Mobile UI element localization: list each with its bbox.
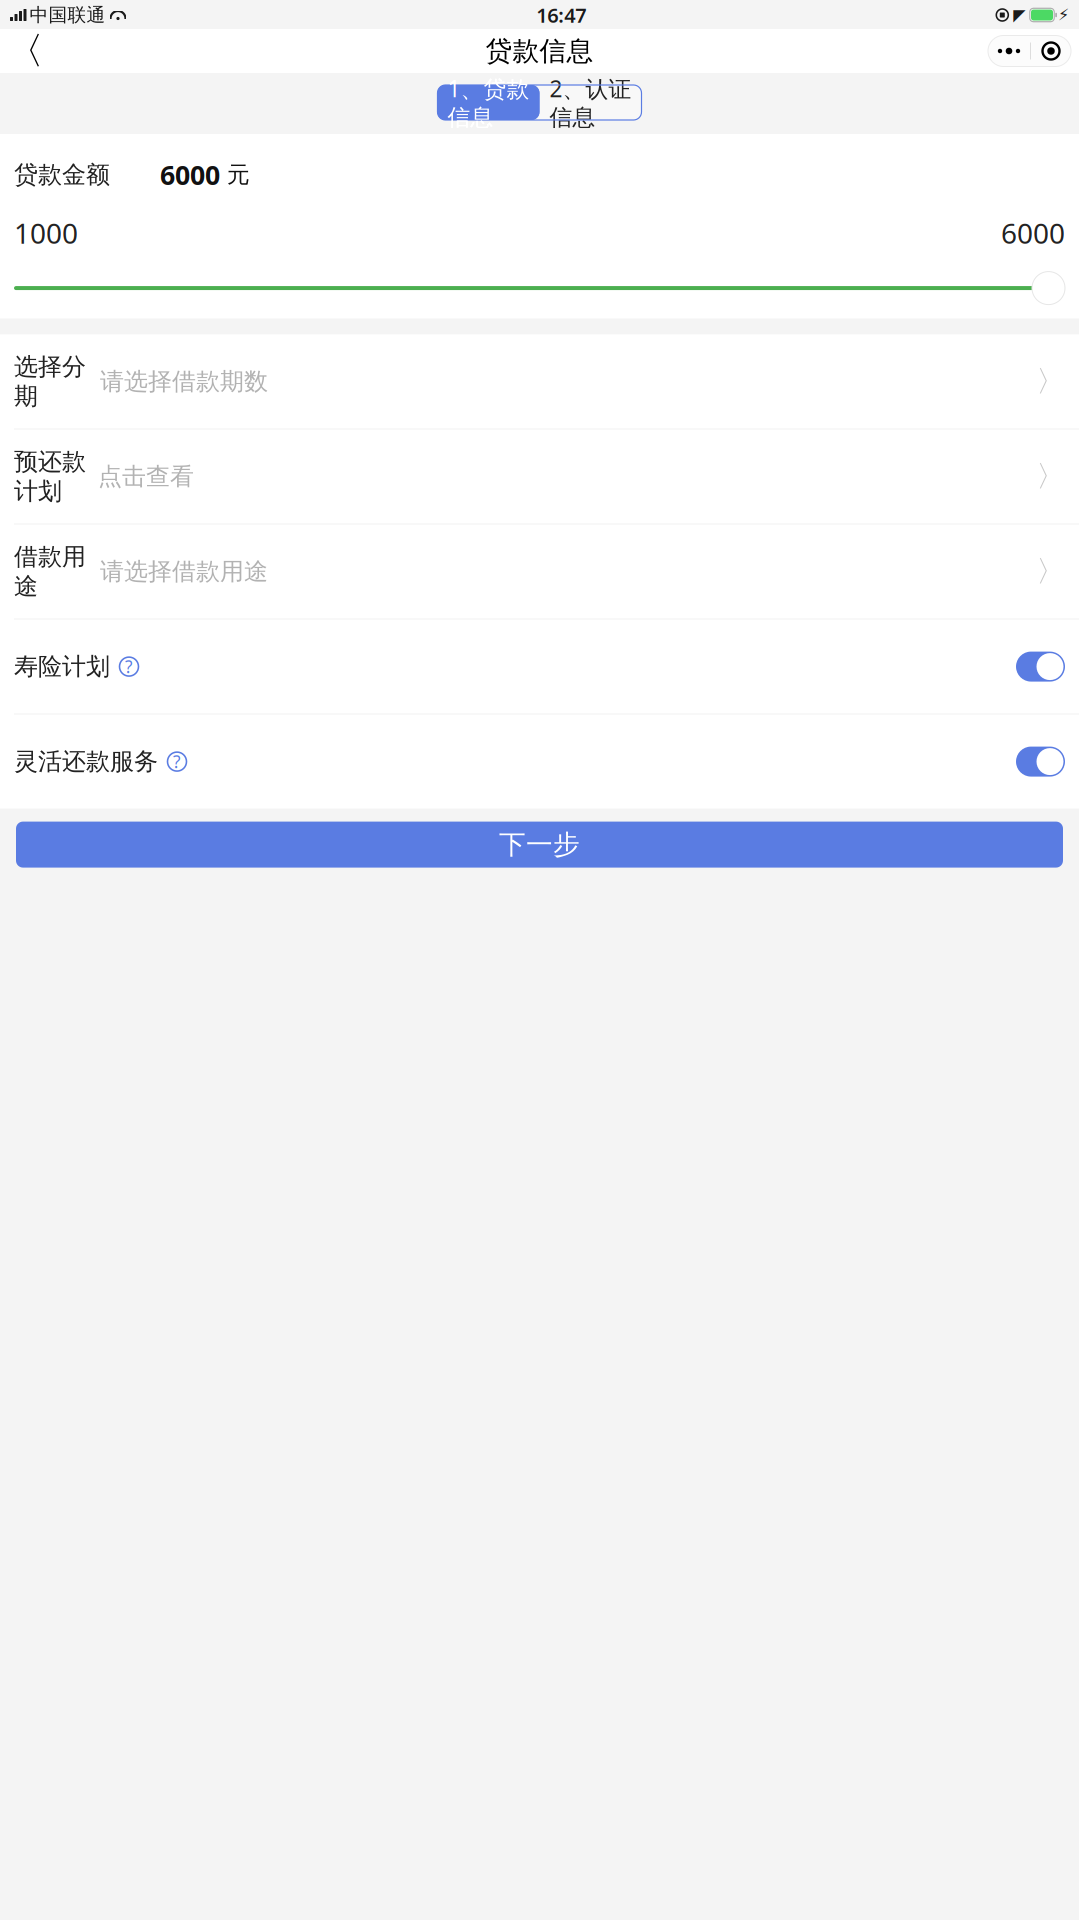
staticText: 寿险计划	[14, 652, 110, 681]
staticText: 1、贷款信息	[447, 73, 529, 131]
staticText: 2、认证信息	[549, 73, 631, 131]
button[interactable]: Close	[1031, 36, 1071, 66]
button[interactable]: 下一步	[16, 822, 1063, 868]
staticText: 元	[220, 161, 250, 189]
staticText: ?	[173, 750, 181, 773]
button[interactable]: Toggle	[1016, 747, 1065, 777]
staticText: 〉	[1036, 364, 1065, 400]
button[interactable]: 1、贷款信息	[437, 85, 539, 120]
staticText: 中国联通	[29, 3, 105, 26]
staticText: 〈	[6, 28, 43, 74]
staticText: 灵活还款服务	[14, 747, 158, 776]
staticText: 点击查看	[98, 462, 194, 491]
staticText: 〉	[1036, 459, 1065, 495]
button[interactable]: 2、认证信息	[539, 85, 641, 120]
staticText: 请选择借款期数	[100, 367, 268, 396]
staticText: 6000	[160, 157, 220, 192]
button[interactable]: Back	[8, 34, 42, 68]
staticText: 预还款计划	[14, 447, 86, 506]
staticText: 贷款金额	[14, 160, 110, 189]
staticText: 6000	[1001, 214, 1065, 252]
button[interactable]: Help	[164, 749, 190, 775]
staticText: 1000	[14, 214, 78, 252]
button[interactable]: 选择分期	[0, 335, 1079, 429]
staticText: 1、贷款信息	[447, 73, 529, 131]
staticText: 16:47	[536, 2, 586, 28]
button[interactable]: More	[988, 36, 1030, 66]
staticText: ⚡︎	[1058, 6, 1069, 24]
staticText: 请选择借款用途	[100, 557, 268, 586]
button[interactable]: 借款用途	[0, 525, 1079, 619]
staticText: ◤	[1013, 6, 1025, 24]
staticText: 选择分期	[14, 352, 86, 411]
staticText: ?	[125, 655, 133, 678]
button[interactable]: Toggle	[1016, 652, 1065, 682]
button[interactable]: 预还款计划	[0, 430, 1079, 524]
staticText: 下一步	[499, 828, 580, 861]
button[interactable]: Help	[116, 654, 142, 680]
staticText: 〉	[1036, 554, 1065, 590]
button[interactable]: 1、贷款信息	[437, 85, 539, 120]
staticText: 借款用途	[14, 542, 86, 601]
staticText: 贷款信息	[485, 35, 593, 67]
